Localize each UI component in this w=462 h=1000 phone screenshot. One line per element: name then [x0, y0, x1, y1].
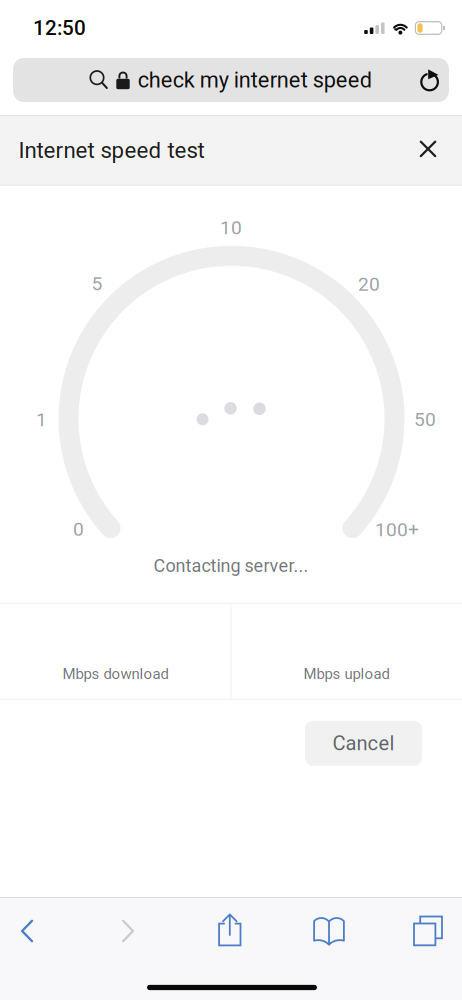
button[interactable]: Tabs [400, 900, 456, 962]
staticText: 1 [36, 409, 47, 431]
button[interactable]: Forward [100, 900, 156, 962]
staticText: 50 [414, 408, 436, 431]
staticText: Cancel [332, 731, 394, 755]
staticText: 12:50 [33, 16, 86, 40]
staticText: check my internet speed [138, 67, 372, 93]
staticText: Internet speed test [18, 137, 204, 163]
button[interactable]: Share [202, 899, 258, 961]
button[interactable]: Close [406, 127, 450, 174]
staticText: 5 [91, 273, 102, 295]
staticText: 0 [73, 518, 84, 540]
staticText: Mbps download [62, 665, 168, 682]
staticText: 10 [220, 217, 242, 239]
button[interactable]: check my internet speed [13, 58, 449, 102]
staticText: Mbps upload [303, 665, 389, 682]
staticText: Contacting server... [153, 555, 308, 576]
button[interactable]: Back [0, 900, 55, 962]
button[interactable]: Cancel [305, 721, 422, 766]
button[interactable]: Bookmarks [301, 900, 357, 962]
staticText: 100+ [375, 518, 419, 541]
staticText: 20 [358, 273, 380, 296]
